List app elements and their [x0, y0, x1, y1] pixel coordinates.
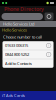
staticText: 01633 006315 — [5, 43, 28, 48]
staticText: 0844 800 5252 — [5, 52, 29, 57]
staticText: i — [48, 44, 49, 47]
staticText: Phone Directory — [4, 5, 44, 13]
staticText: iT Ads Cards — [2, 93, 25, 98]
staticText: Add to Contacts — [5, 61, 32, 66]
staticText: Choose number to call — [3, 34, 42, 40]
button[interactable]: Search — [44, 12, 53, 20]
staticText: Hello Services Ltd — [3, 21, 34, 27]
button[interactable]: 0844 800 5252 — [2, 50, 53, 59]
staticText: i — [48, 53, 49, 56]
button[interactable]: Add to Contacts — [2, 59, 53, 68]
button[interactable]: 01633 006315 — [2, 41, 53, 50]
staticText: Hello Services — [2, 27, 27, 33]
